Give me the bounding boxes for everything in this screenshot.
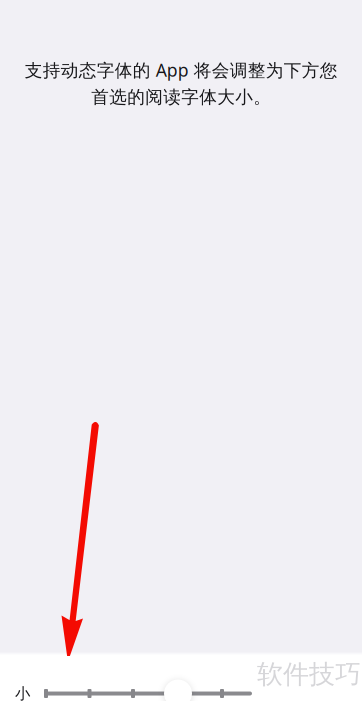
staticText: 小 [15,684,30,701]
staticText: 首选的阅读字体大小。 [91,86,271,108]
staticText: 软件技巧 [257,658,361,691]
staticText: 支持动态字体的 App 将会调整为下方您 [24,58,337,82]
